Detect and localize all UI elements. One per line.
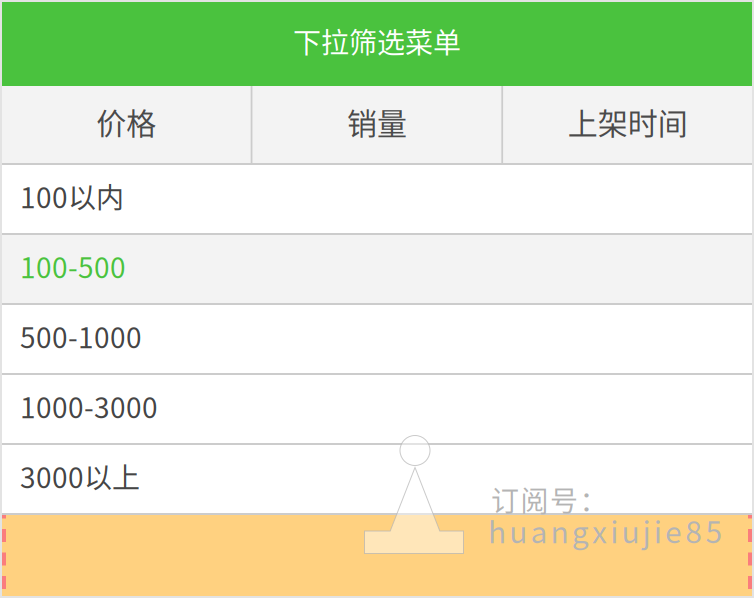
button[interactable]: 100-500 bbox=[2, 235, 752, 303]
staticText: 下拉筛选菜单 bbox=[293, 21, 461, 61]
staticText: 100-500 bbox=[20, 246, 126, 286]
staticText: 1000-3000 bbox=[20, 386, 158, 426]
staticText: 销量 bbox=[347, 100, 407, 143]
staticText: 100以内 bbox=[20, 176, 124, 216]
staticText: 上架时间 bbox=[568, 100, 688, 143]
staticText: huangxiujie85 bbox=[488, 509, 733, 552]
button[interactable]: 500-1000 bbox=[2, 305, 752, 373]
button[interactable]: 100以内 bbox=[2, 165, 752, 233]
button[interactable]: 价格 bbox=[2, 86, 251, 163]
staticText: 500-1000 bbox=[20, 316, 142, 356]
staticText: 价格 bbox=[96, 100, 156, 143]
button[interactable]: 3000以上 bbox=[2, 445, 752, 513]
staticText: 3000以上 bbox=[20, 456, 140, 496]
button[interactable]: 销量 bbox=[253, 86, 501, 163]
button[interactable]: 上架时间 bbox=[503, 86, 752, 163]
button[interactable]: 1000-3000 bbox=[2, 375, 752, 443]
staticText: 订阅号： bbox=[491, 479, 607, 519]
